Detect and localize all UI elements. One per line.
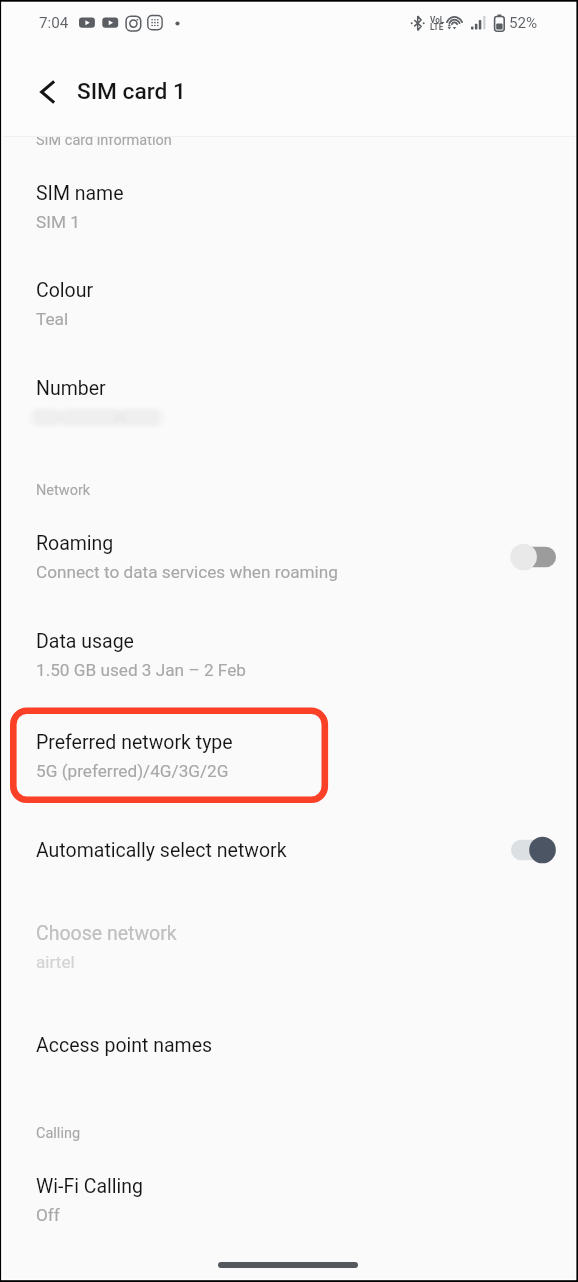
button[interactable]: Automatically select network xyxy=(0,815,578,893)
staticText: Access point names xyxy=(36,1034,213,1057)
staticText: 5G (preferred)/4G/3G/2G xyxy=(36,761,229,781)
staticText: Off xyxy=(36,1205,60,1225)
staticText: Colour xyxy=(36,279,94,302)
button[interactable]: SIM name xyxy=(0,158,578,255)
staticText: Automatically select network xyxy=(36,839,287,862)
button[interactable]: Colour xyxy=(0,255,578,352)
staticText: Number xyxy=(36,377,106,400)
staticText: Connect to data services when roaming xyxy=(36,562,338,582)
staticText: Data usage xyxy=(36,630,134,653)
button[interactable]: Data usage xyxy=(0,606,578,703)
staticText: 52% xyxy=(509,14,538,32)
button[interactable]: Number xyxy=(0,353,578,450)
staticText: LTE xyxy=(430,22,444,32)
staticText: SIM card 1 xyxy=(77,78,186,105)
staticText: Network xyxy=(36,482,91,499)
staticText: Preferred network type xyxy=(36,731,233,754)
button[interactable]: Navigate up xyxy=(23,70,67,114)
button[interactable]: Roaming, off xyxy=(505,533,563,581)
staticText: SIM card information xyxy=(36,132,172,149)
button[interactable]: Choose network xyxy=(0,898,578,995)
staticText: Roaming xyxy=(36,532,114,555)
staticText: SIM 1 xyxy=(36,212,80,232)
button[interactable]: Automatically select network, on xyxy=(505,826,563,874)
staticText: SIM name xyxy=(36,182,124,205)
staticText: 1.50 GB used 3 Jan – 2 Feb xyxy=(36,660,246,680)
staticText: Calling xyxy=(36,1125,81,1142)
staticText: VoL xyxy=(430,15,445,25)
button[interactable]: Roaming xyxy=(0,508,578,605)
button[interactable]: Access point names xyxy=(0,1010,578,1088)
staticText: 7:04 xyxy=(39,14,69,32)
staticText: Choose network xyxy=(36,922,177,945)
button[interactable]: Preferred network type xyxy=(0,707,578,804)
button[interactable]: Wi-Fi Calling xyxy=(0,1151,578,1248)
staticText: Wi-Fi Calling xyxy=(36,1175,144,1198)
staticText: Teal xyxy=(36,309,69,329)
staticText: airtel xyxy=(36,952,75,972)
